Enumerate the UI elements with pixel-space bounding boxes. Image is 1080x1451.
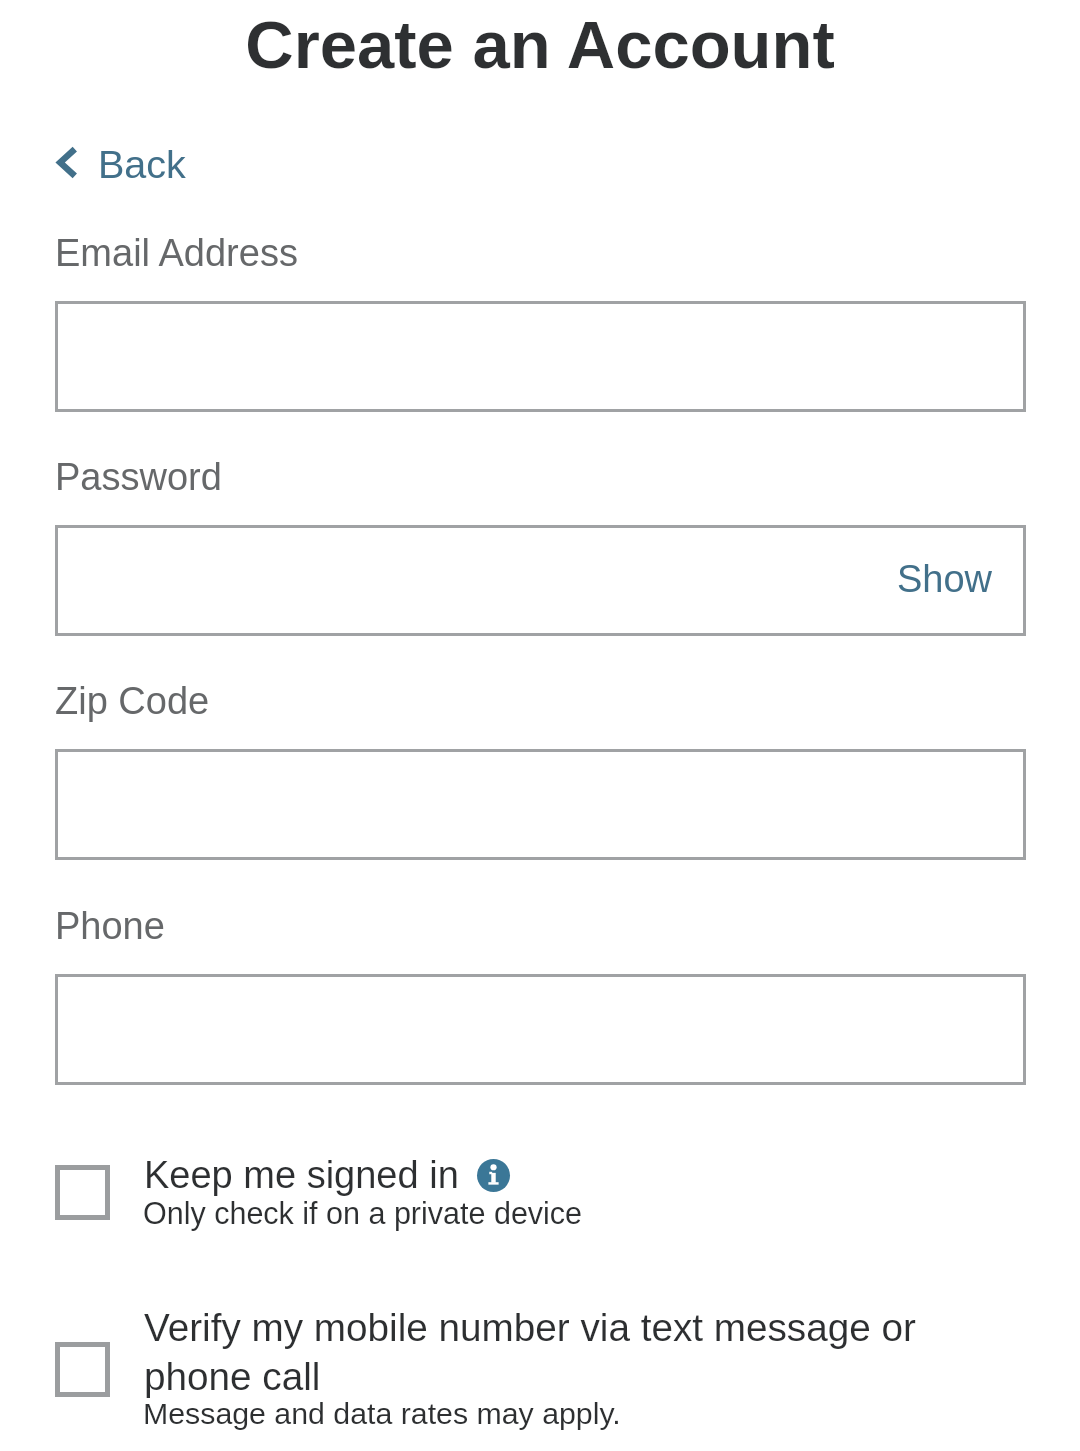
staticText: Keep me signed in bbox=[144, 1154, 459, 1196]
button[interactable]: Show bbox=[897, 558, 993, 600]
button[interactable]: Phone input field bbox=[55, 974, 1026, 1085]
staticText: Message and data rates may apply. bbox=[143, 1397, 621, 1431]
staticText: Show bbox=[897, 558, 993, 600]
staticText: Back bbox=[98, 142, 186, 186]
staticText: Zip Code bbox=[55, 680, 210, 722]
staticText: Password bbox=[55, 456, 222, 498]
button[interactable]: Password input field bbox=[55, 525, 1026, 636]
staticText: Create an Account bbox=[245, 7, 835, 82]
button[interactable]: Email Address input field bbox=[55, 301, 1026, 412]
button[interactable]: Zip Code input field bbox=[55, 749, 1026, 860]
staticText: Email Address bbox=[55, 232, 298, 274]
staticText: Phone bbox=[55, 905, 165, 947]
button[interactable]: Keep me signed in bbox=[55, 1154, 575, 1236]
button[interactable]: More information about keep me signed in bbox=[477, 1159, 510, 1192]
button[interactable]: Back bbox=[44, 138, 199, 198]
button[interactable]: Verify my mobile number via text message… bbox=[55, 1306, 935, 1441]
staticText: Only check if on a private device bbox=[143, 1196, 583, 1230]
staticText: Verify my mobile number via text message… bbox=[144, 1306, 916, 1398]
